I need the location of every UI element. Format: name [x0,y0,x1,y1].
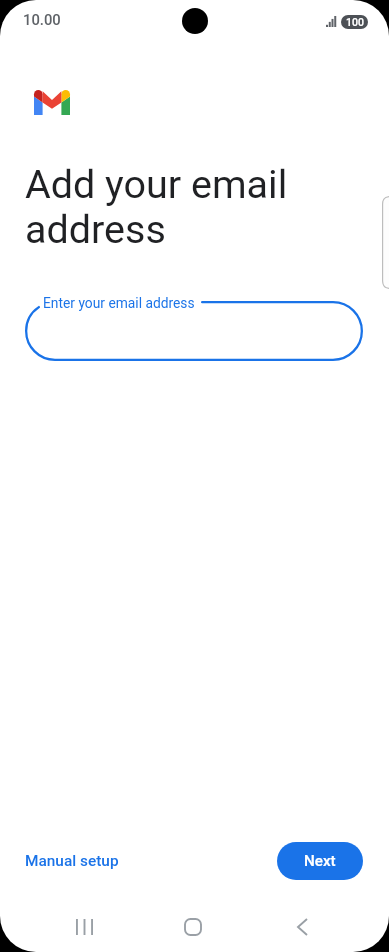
button[interactable]: Enter your email address [25,301,363,361]
button[interactable]: Edge panel [382,196,389,289]
button[interactable]: Back [265,903,339,951]
button[interactable]: Manual setup [14,847,130,875]
staticText: 10.00 [23,11,61,28]
staticText: Manual setup [25,852,119,870]
staticText: Next [304,852,336,870]
staticText: Enter your email address [43,295,195,311]
button[interactable]: Recent apps [47,903,121,951]
button[interactable]: Next [277,842,363,880]
button[interactable]: Home [156,903,230,951]
staticText: Add your email address [25,161,288,252]
staticText: 100 [346,16,364,28]
